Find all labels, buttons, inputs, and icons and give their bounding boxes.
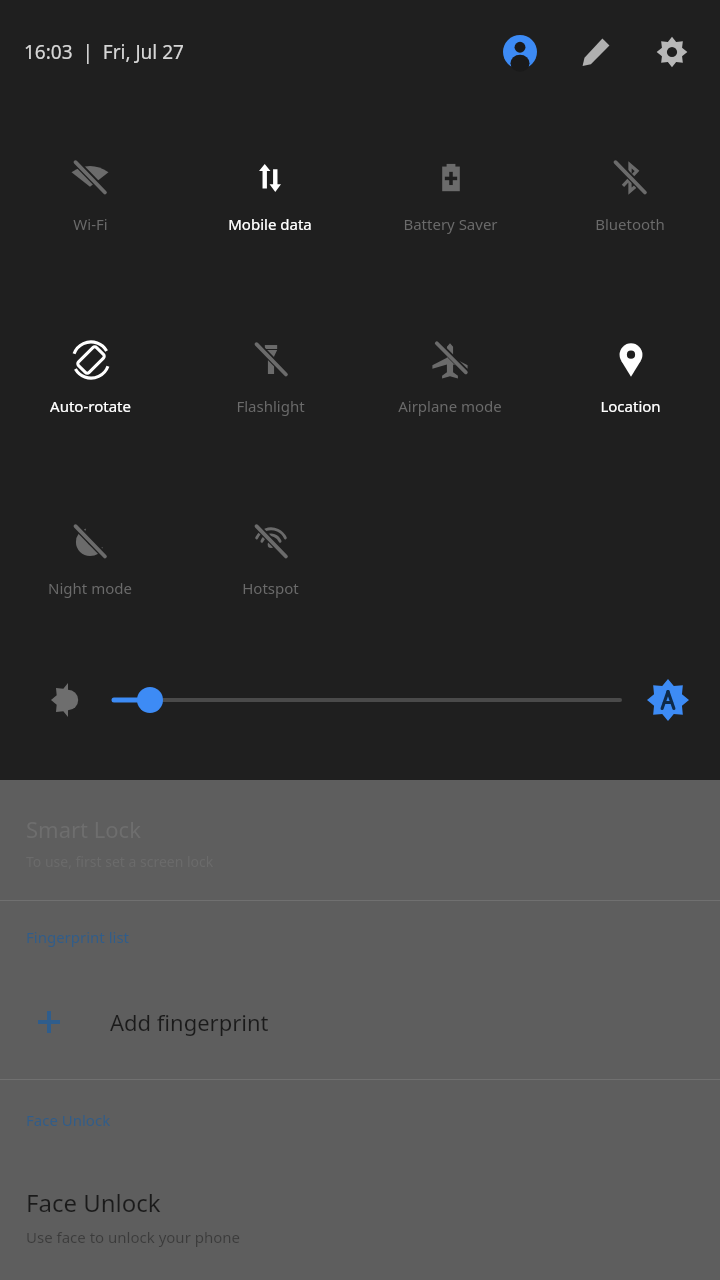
button[interactable]: Night mode [48, 514, 132, 604]
button[interactable]: User account [496, 28, 544, 76]
button[interactable]: Flashlight [236, 332, 305, 422]
button[interactable]: Battery Saver [403, 150, 498, 240]
staticText: 16:03 | Fri, Jul 27 [24, 39, 184, 65]
staticText: Airplane mode [398, 396, 502, 416]
button[interactable]: Auto-rotate [50, 332, 131, 422]
staticText: Battery Saver [403, 214, 498, 234]
staticText: Flashlight [236, 396, 305, 416]
button[interactable]: Auto brightness [640, 672, 696, 728]
button[interactable]: Settings [648, 28, 696, 76]
staticText: Use face to unlock your phone [26, 1227, 241, 1247]
staticText: Face Unlock [26, 1186, 161, 1219]
button[interactable]: Face Unlock [0, 1186, 720, 1247]
button[interactable]: Wi-Fi [68, 150, 112, 240]
staticText: Smart Lock [26, 814, 141, 844]
staticText: To use, first set a screen lock [26, 852, 214, 871]
button[interactable]: Add fingerprint [0, 987, 720, 1057]
button[interactable]: Airplane mode [398, 332, 502, 422]
button[interactable]: Edit tiles [572, 28, 620, 76]
staticText: Wi-Fi [73, 214, 108, 234]
staticText: Mobile data [228, 214, 312, 234]
staticText: Location [600, 396, 661, 416]
staticText: Add fingerprint [110, 1007, 269, 1037]
button[interactable]: Brightness [44, 676, 92, 724]
button[interactable]: Hotspot [242, 514, 299, 604]
button[interactable] [114, 676, 620, 724]
button[interactable]: Location [600, 332, 661, 422]
staticText: Night mode [48, 578, 132, 598]
staticText: Hotspot [242, 578, 299, 598]
staticText: Bluetooth [595, 214, 665, 234]
staticText: Fingerprint list [26, 927, 130, 947]
button[interactable]: Bluetooth [595, 150, 665, 240]
staticText: Auto-rotate [50, 396, 131, 416]
staticText: Face Unlock [26, 1110, 111, 1130]
button[interactable]: Mobile data [228, 150, 312, 240]
